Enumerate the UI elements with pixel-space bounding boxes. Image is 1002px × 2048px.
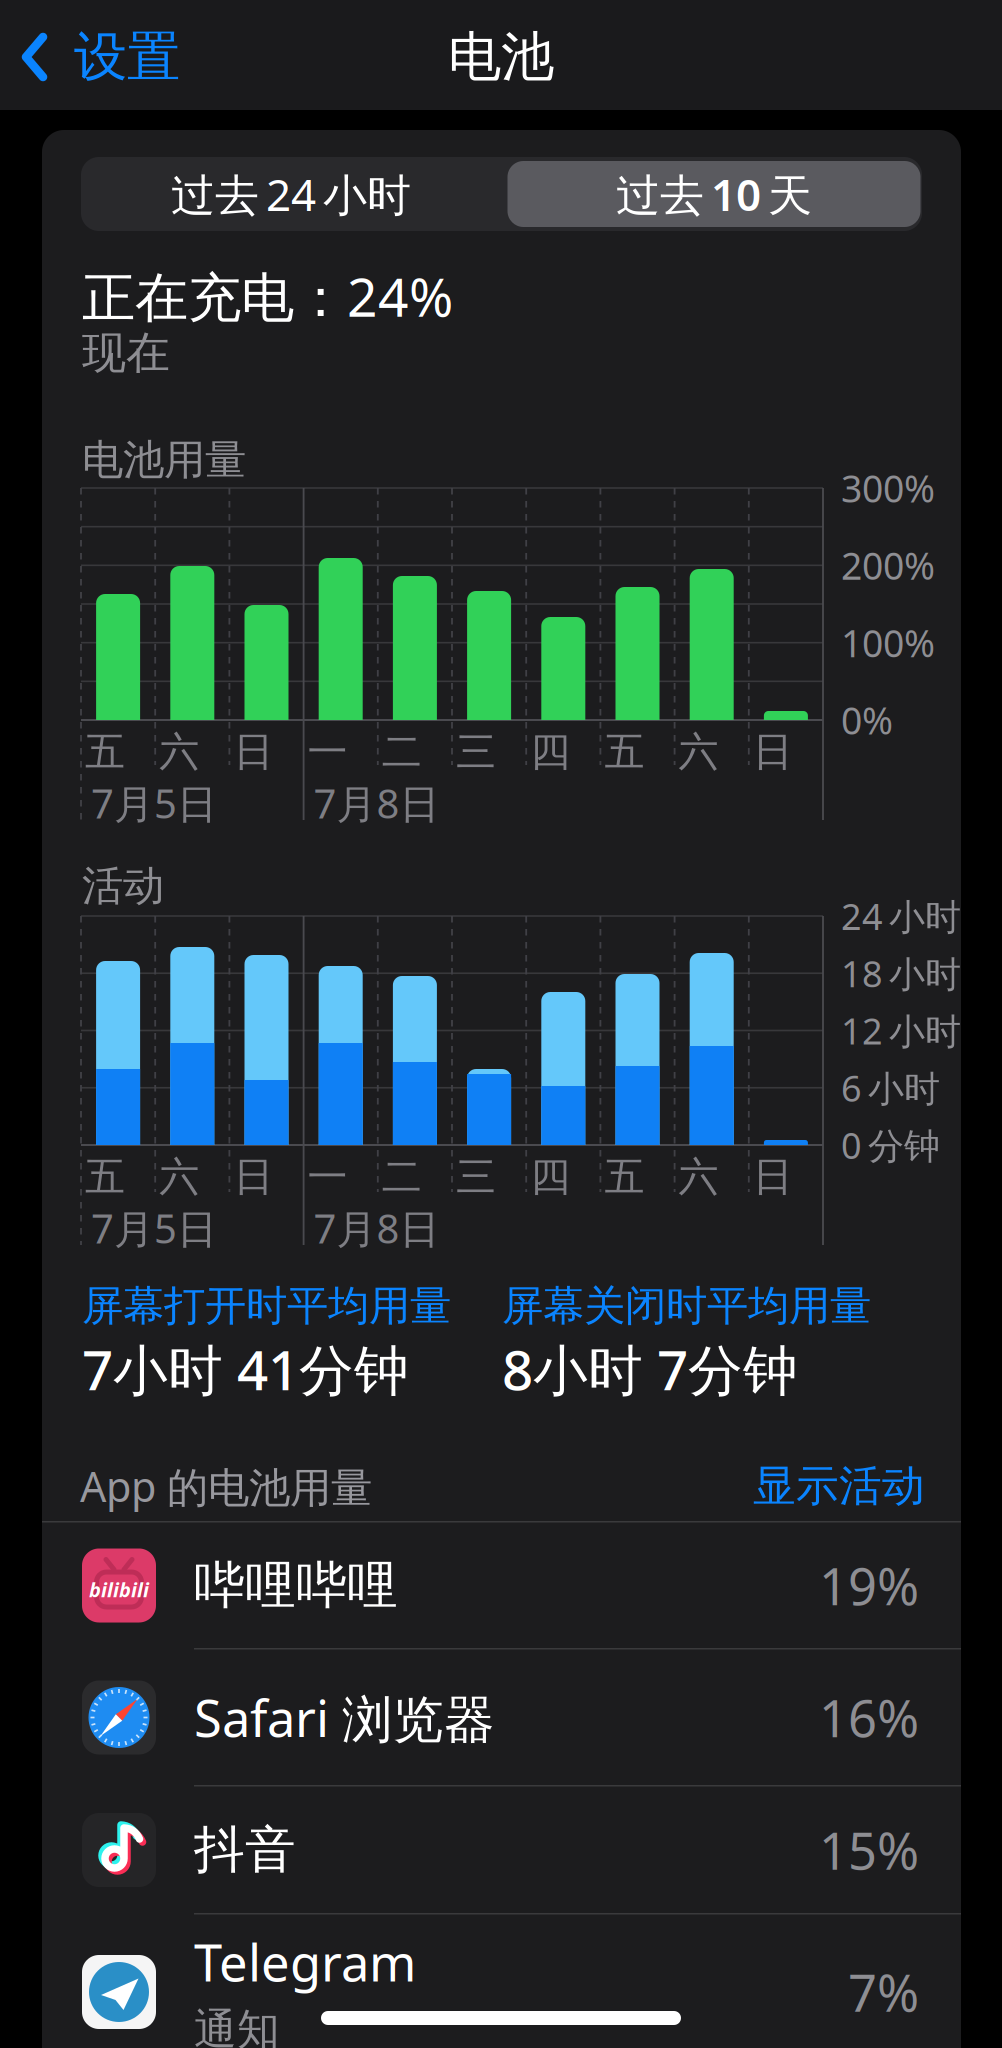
staticText: 7小时 41分钟 [82,1333,409,1405]
staticText: 200% [841,540,935,590]
button[interactable]: Safari 浏览器 [42,1650,961,1784]
staticText: 一 [308,727,348,776]
staticText: 7月5日 [91,1201,217,1254]
button[interactable]: 设置 [22,17,222,97]
staticText: 一 [308,1152,348,1201]
staticText: 24 小时 [841,892,961,940]
staticText: 过去 10 天 [616,165,812,223]
staticText: 8小时 7分钟 [502,1333,798,1405]
staticText: 六 [159,727,199,776]
staticText: 15% [819,1816,919,1884]
staticText: 五 [604,727,644,776]
staticText: 屏幕关闭时平均用量 [502,1281,871,1331]
staticText: 电池用量 [82,435,246,485]
staticText: 100% [841,618,935,667]
staticText: 抖音 [194,1819,296,1881]
staticText: 7月8日 [314,776,440,829]
staticText: 正在充电：24% [82,261,453,331]
staticText: 三 [456,1152,496,1201]
staticText: 7月5日 [91,776,217,829]
staticText: 0% [841,695,893,745]
staticText: 活动 [82,861,164,911]
staticText: 哔哩哔哩 [194,1554,398,1617]
button[interactable]: 显示活动 [705,1460,925,1512]
staticText: 电池 [448,24,554,90]
staticText: 四 [530,727,570,776]
staticText: App 的电池用量 [80,1458,372,1513]
staticText: 三 [456,727,496,776]
staticText: 五 [604,1152,644,1201]
staticText: 五 [85,727,125,776]
button[interactable]: 过去 24 小时 [82,157,499,231]
button[interactable]: 抖音 [42,1783,961,1917]
staticText: 6 小时 [841,1064,940,1112]
staticText: 六 [679,727,719,776]
staticText: 六 [679,1152,719,1201]
staticText: 设置 [74,24,180,90]
staticText: 日 [753,727,793,776]
button[interactable]: 过去 10 天 [507,161,920,227]
staticText: 显示活动 [753,1460,925,1512]
staticText: 四 [530,1152,570,1201]
staticText: bilibili [89,1576,149,1603]
staticText: 六 [159,1152,199,1201]
staticText: 19% [819,1552,919,1619]
staticText: 过去 24 小时 [171,165,411,223]
staticText: 日 [233,727,273,776]
staticText: 五 [85,1152,125,1201]
button[interactable]: Telegram [42,1925,961,2048]
staticText: 现在 [82,326,170,380]
staticText: Safari 浏览器 [194,1684,495,1751]
staticText: 二 [382,727,422,776]
staticText: 日 [233,1152,273,1201]
staticText: 300% [841,463,935,513]
staticText: 7% [848,1958,919,2026]
staticText: Telegram [194,1928,416,1995]
staticText: 7月8日 [314,1201,440,1254]
staticText: 通知 [194,2003,280,2048]
staticText: 18 小时 [841,949,961,997]
staticText: 16% [819,1684,919,1751]
staticText: 屏幕打开时平均用量 [82,1281,451,1331]
staticText: 日 [753,1152,793,1201]
button[interactable]: bilibili [42,1518,961,1652]
staticText: 二 [382,1152,422,1201]
staticText: 12 小时 [841,1007,961,1054]
staticText: 0 分钟 [841,1121,940,1169]
